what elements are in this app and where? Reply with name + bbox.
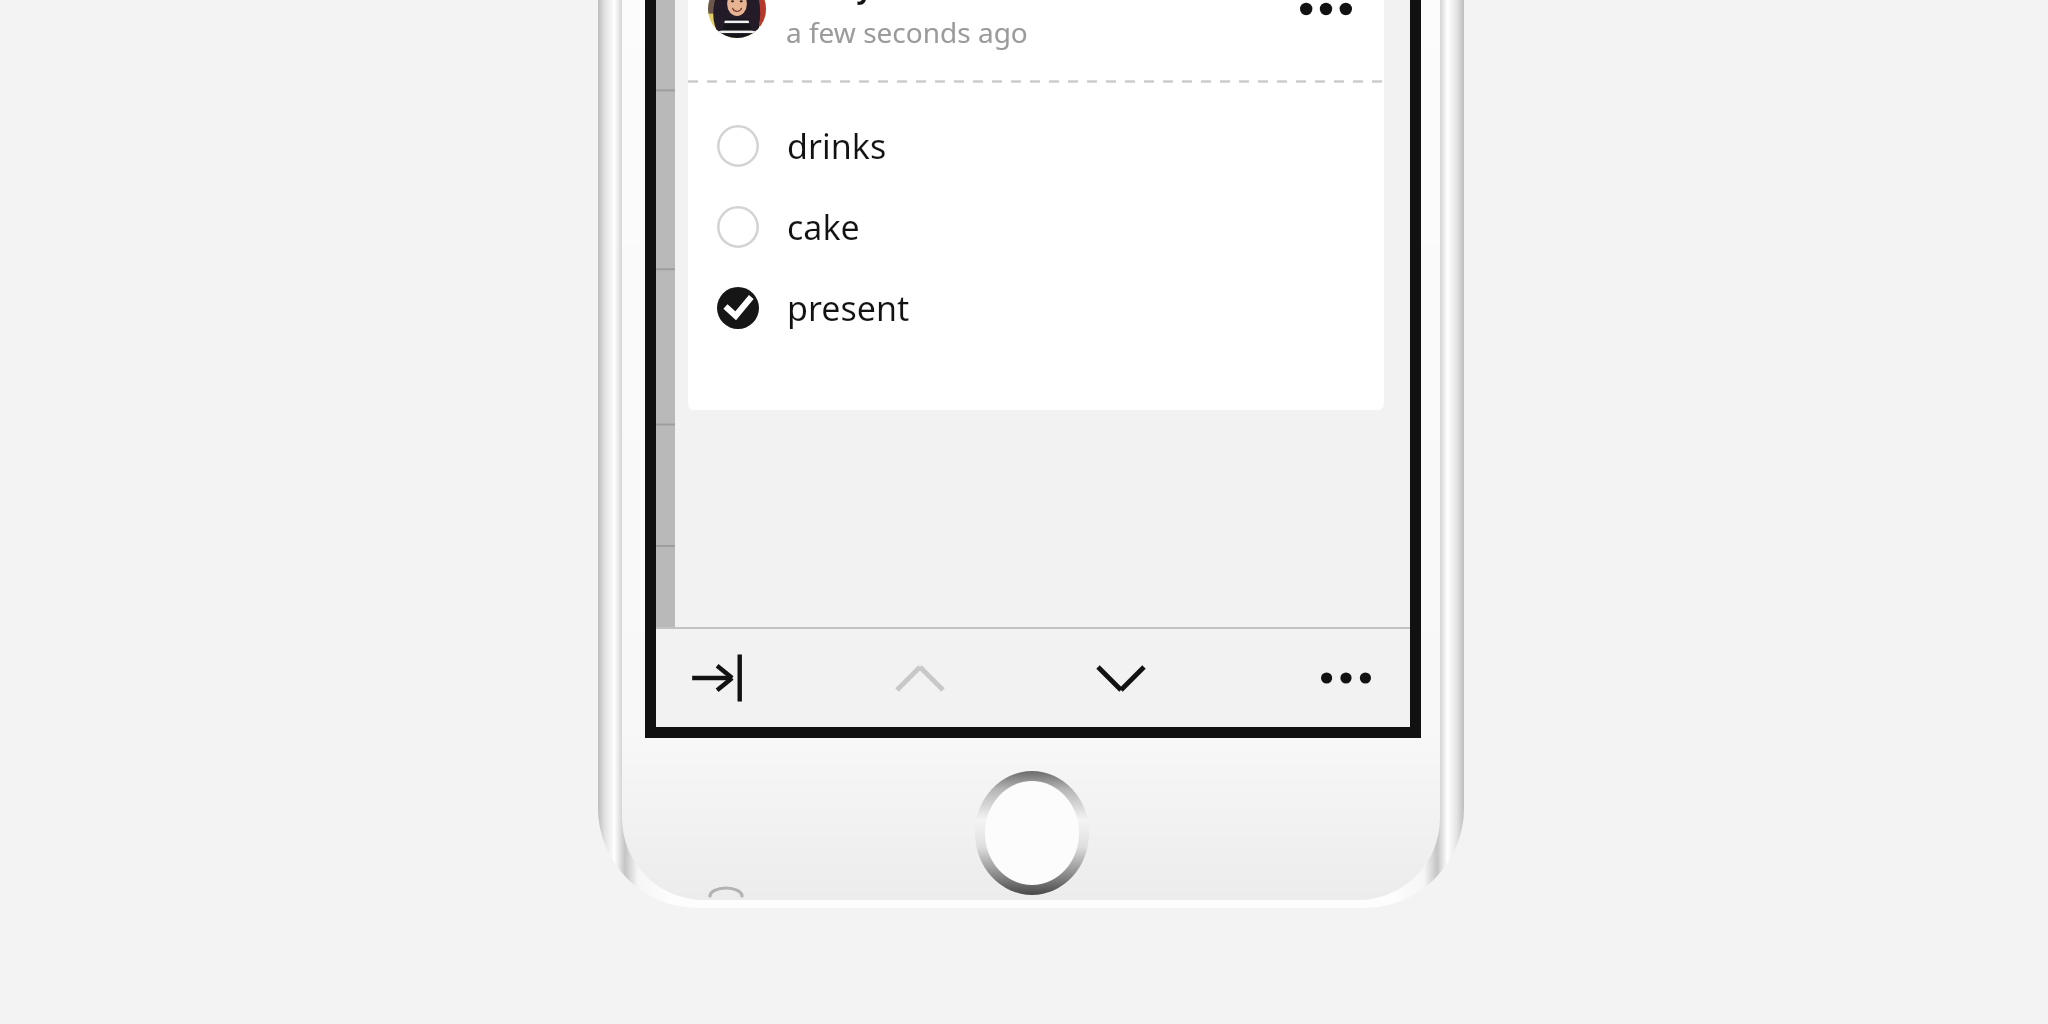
button[interactable]: Martyna: [688, 0, 1384, 80]
button[interactable]: Home: [972, 768, 1092, 898]
staticText: drinks: [787, 123, 887, 169]
staticText: Martyna: [786, 0, 910, 6]
button[interactable]: drinks: [688, 105, 1384, 186]
staticText: present: [787, 285, 910, 331]
button[interactable]: Previous field: [870, 629, 970, 727]
staticText: cake: [787, 204, 860, 250]
button[interactable]: More options: [1276, 0, 1376, 59]
button[interactable]: More: [1296, 629, 1396, 727]
staticText: a few seconds ago: [786, 13, 1028, 51]
button[interactable]: Indent: [670, 629, 770, 727]
button[interactable]: Next field: [1071, 629, 1171, 727]
button[interactable]: cake: [688, 186, 1384, 267]
button[interactable]: present: [688, 267, 1384, 348]
